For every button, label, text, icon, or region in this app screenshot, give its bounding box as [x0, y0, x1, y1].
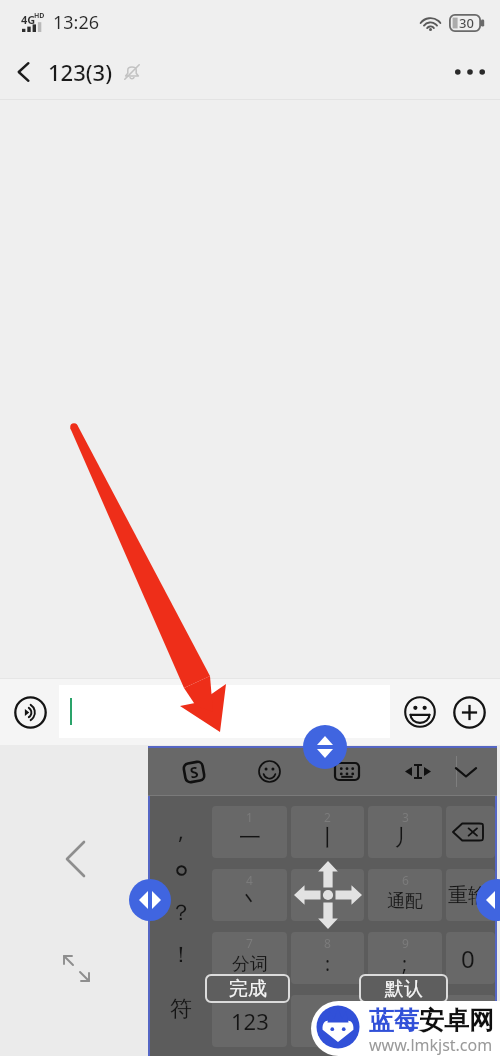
staticText: 通配: [387, 890, 423, 913]
staticText: :: [325, 951, 331, 977]
button[interactable]: [59, 685, 390, 738]
staticText: 9: [402, 935, 409, 951]
staticText: 安卓网: [419, 1005, 494, 1036]
button[interactable]: 123: [210, 995, 289, 1047]
staticText: 13:26: [53, 10, 100, 35]
staticText: 1: [246, 809, 253, 825]
button[interactable]: 0: [446, 932, 489, 984]
staticText: 5: [324, 872, 331, 888]
button[interactable]: Hide keyboard: [442, 748, 490, 795]
button[interactable]: 7: [210, 932, 289, 984]
button[interactable]: 4: [210, 869, 289, 921]
staticText: ？: [170, 899, 192, 927]
button[interactable]: 3: [366, 806, 444, 858]
staticText: ;: [402, 951, 408, 977]
staticText: www.lmkjst.com: [369, 1034, 493, 1056]
staticText: 一: [239, 824, 261, 852]
button[interactable]: 默认: [359, 974, 448, 1003]
button[interactable]: Navigate cursor: [289, 869, 366, 921]
staticText: 6: [402, 872, 409, 888]
button[interactable]: [152, 848, 210, 892]
staticText: 123: [231, 1006, 269, 1036]
button[interactable]: Keyboard layout: [323, 748, 371, 795]
button[interactable]: ,: [152, 808, 210, 852]
button[interactable]: 符: [152, 987, 210, 1031]
staticText: 0: [461, 942, 475, 975]
button[interactable]: Voice input: [13, 695, 47, 729]
button[interactable]: More options: [440, 44, 500, 100]
staticText: 丿: [394, 824, 416, 852]
button[interactable]: 6: [366, 869, 444, 921]
button[interactable]: Back: [0, 44, 48, 100]
button[interactable]: 重输: [446, 869, 489, 921]
button[interactable]: Backspace: [446, 806, 489, 858]
button[interactable]: 8: [289, 932, 366, 984]
button[interactable]: ？: [152, 891, 210, 935]
staticText: 蓝莓: [369, 1005, 419, 1036]
button[interactable]: 完成: [205, 974, 290, 1003]
staticText: 完成: [229, 977, 267, 1001]
staticText: 4G: [21, 12, 36, 27]
button[interactable]: Sogou input: [170, 748, 218, 795]
staticText: 4: [246, 872, 253, 888]
staticText: 默认: [385, 977, 423, 1001]
staticText: 8: [324, 935, 331, 951]
button[interactable]: [289, 995, 366, 1047]
staticText: 丨: [317, 824, 339, 852]
staticText: 2: [324, 809, 331, 825]
button[interactable]: [446, 995, 489, 1047]
button[interactable]: [366, 995, 444, 1047]
staticText: 123(3): [48, 57, 113, 87]
staticText: 重输: [448, 883, 488, 908]
button[interactable]: 9: [366, 932, 444, 984]
button[interactable]: 5: [289, 869, 366, 921]
staticText: 30: [459, 14, 474, 32]
button[interactable]: 2: [289, 806, 366, 858]
staticText: ！: [170, 941, 192, 969]
button[interactable]: 1: [210, 806, 289, 858]
button[interactable]: Emoji panel: [245, 748, 293, 795]
button[interactable]: ！: [152, 933, 210, 977]
staticText: 分词: [232, 953, 268, 976]
button[interactable]: Emoji: [403, 695, 437, 729]
button[interactable]: Add attachment: [452, 695, 486, 729]
staticText: HD: [34, 11, 45, 21]
staticText: 3: [402, 809, 409, 825]
staticText: ,: [178, 815, 184, 845]
staticText: 丶: [239, 887, 261, 915]
staticText: S: [188, 761, 201, 783]
staticText: 符: [170, 995, 192, 1023]
button[interactable]: Cursor move: [394, 748, 442, 795]
staticText: 7: [246, 935, 253, 951]
